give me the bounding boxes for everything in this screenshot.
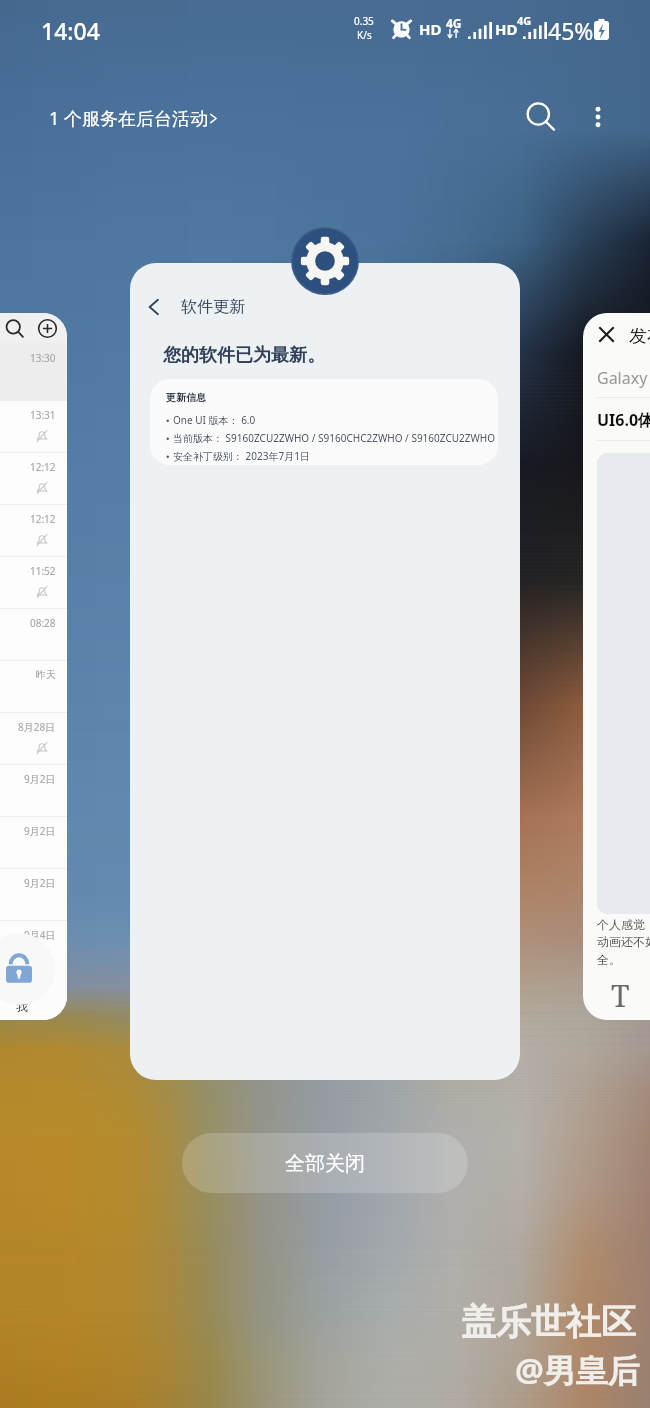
staticText: 盖乐世社区 [461, 1300, 636, 1344]
staticText: 4G [517, 13, 532, 28]
button[interactable]: Lock [0, 933, 55, 1005]
staticText: 13:31 [30, 408, 56, 422]
staticText: UI6.0体验版 [597, 409, 650, 431]
button[interactable]: 11:52 [0, 556, 67, 608]
button[interactable]: 9月2日 [0, 816, 67, 868]
staticText: HD [495, 19, 518, 39]
button[interactable]: 12:12 [0, 452, 67, 504]
staticText: 8月28日 [18, 720, 56, 734]
staticText: 45% [548, 15, 594, 46]
staticText: 13:30 [30, 351, 56, 365]
button[interactable]: Back [130, 263, 520, 1080]
staticText: @男皇后 [515, 1348, 640, 1392]
staticText: 更新信息 [166, 391, 206, 404]
button[interactable]: 9月2日 [0, 764, 67, 816]
staticText: 全部关闭 [285, 1151, 365, 1176]
staticText: 个人感觉，没更新 动画还不如5.1，不 全。 [597, 917, 650, 967]
staticText: 软件更新 [181, 297, 245, 317]
staticText: 08:28 [30, 616, 56, 630]
staticText: 9月2日 [24, 772, 56, 786]
button[interactable]: Search [518, 94, 564, 140]
staticText: One UI 版本： 6.0 [173, 413, 256, 427]
button[interactable]: 昨天 [0, 660, 67, 712]
button[interactable]: 8月28日 [0, 712, 67, 764]
staticText: 0.35 [354, 14, 374, 28]
staticText: 您的软件已为最新。 [163, 344, 325, 367]
staticText: 12:12 [30, 460, 56, 474]
button[interactable]: 08:28 [0, 608, 67, 660]
button[interactable]: 全部关闭 [182, 1133, 468, 1193]
staticText: 昨天 [36, 668, 56, 681]
staticText: K/s [357, 28, 372, 42]
staticText: 1 个服务在后台活动 [49, 106, 208, 131]
staticText: 11:52 [30, 564, 56, 578]
staticText: 安全补丁级别： 2023年7月1日 [173, 449, 310, 463]
button[interactable]: 12:12 [0, 504, 67, 556]
staticText: 14:04 [41, 15, 100, 46]
button[interactable]: 13:31 [0, 400, 67, 452]
staticText: Galaxy S系列 [597, 367, 650, 389]
button[interactable]: Close [591, 319, 621, 349]
button[interactable]: 13:30 [0, 313, 67, 1020]
staticText: 我 [16, 999, 28, 1014]
staticText: 9月2日 [24, 824, 56, 838]
button[interactable]: 1 个服务在后台活动 [49, 106, 218, 131]
staticText: 发布 [629, 325, 650, 348]
button[interactable]: 13:30 [0, 343, 67, 400]
staticText: 12:12 [30, 512, 56, 526]
staticText: HD [419, 19, 442, 39]
button[interactable]: Close [583, 313, 650, 1020]
staticText: 当前版本： S9160ZCU2ZWHO / S9160CHC2ZWHO / S9… [173, 431, 495, 445]
button[interactable]: 9月2日 [0, 868, 67, 920]
staticText: 9月4日 [24, 928, 56, 942]
button[interactable]: Back [138, 291, 170, 323]
button[interactable]: More options [575, 94, 621, 140]
staticText: T [611, 975, 630, 1016]
staticText: 4G [446, 15, 462, 31]
staticText: 9月2日 [24, 876, 56, 890]
button[interactable]: 9月4日 [0, 920, 67, 972]
